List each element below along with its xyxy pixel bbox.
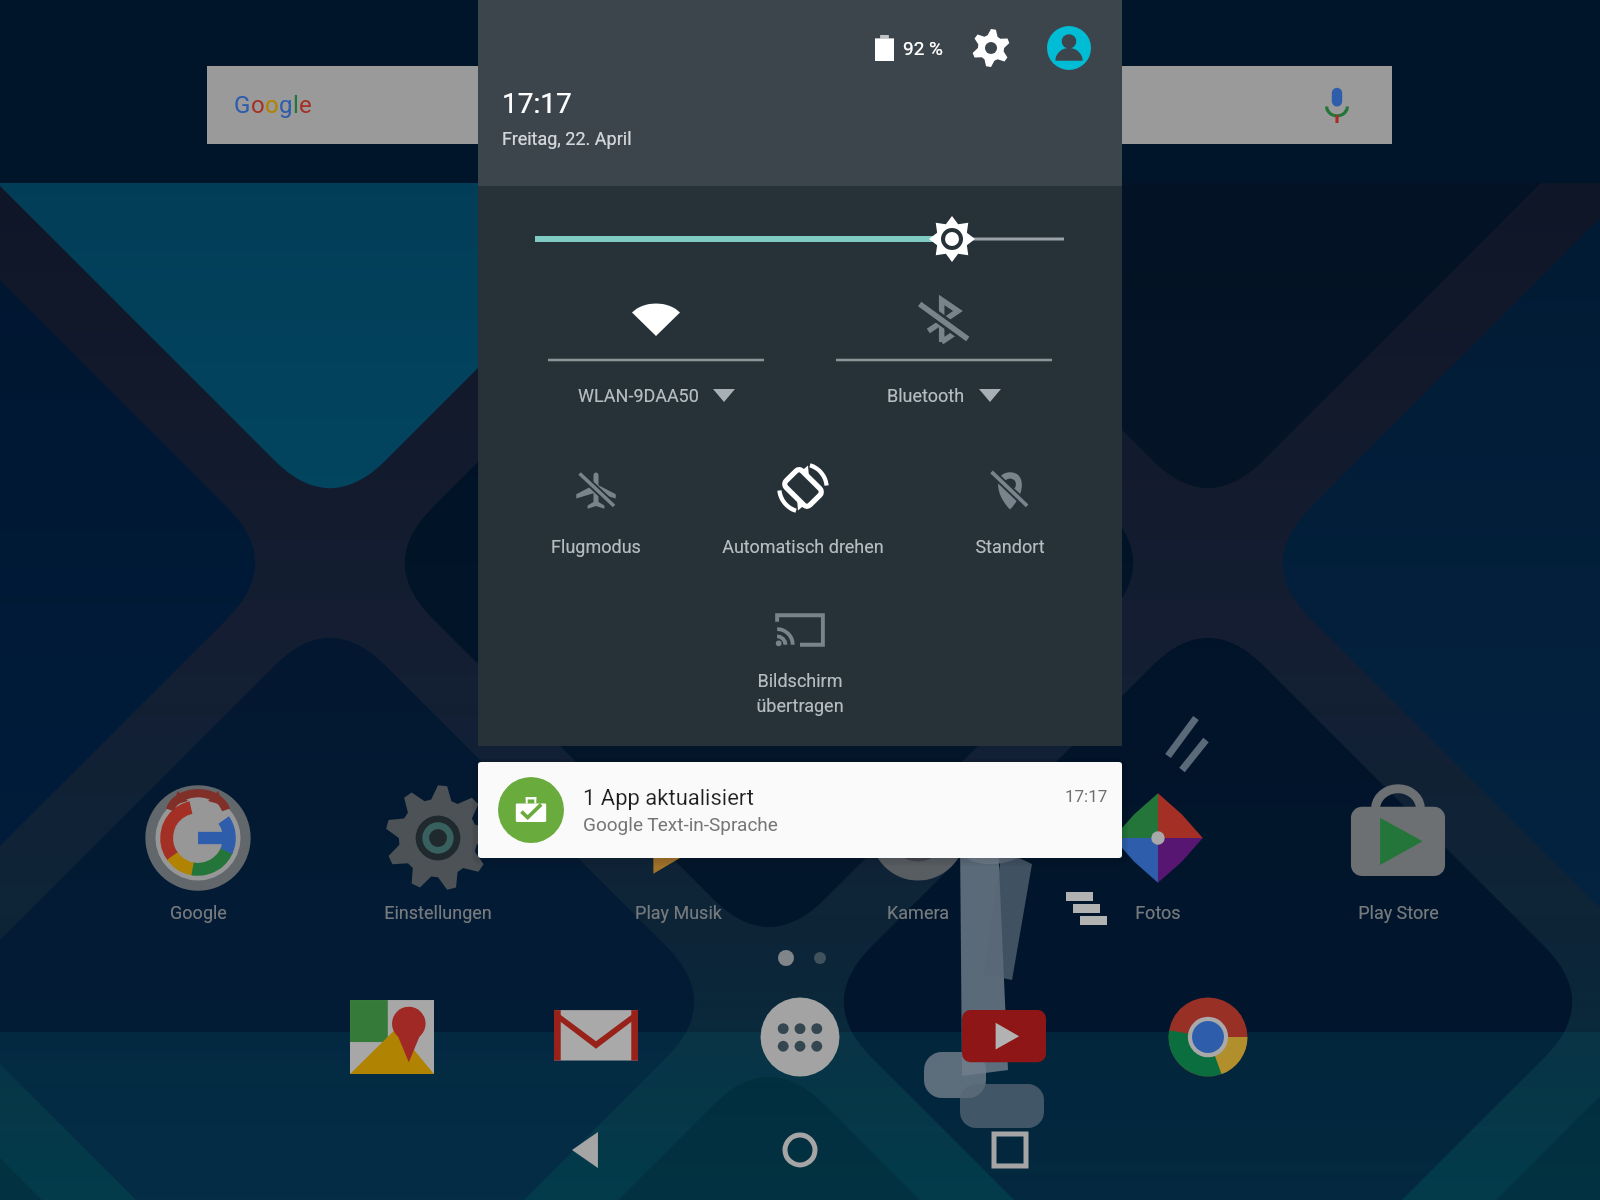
button[interactable]: App <box>1148 992 1268 1082</box>
button[interactable]: App <box>332 992 452 1082</box>
staticText: 92 % <box>903 37 943 59</box>
staticText: Kamera <box>887 902 949 923</box>
staticText: Fotos <box>1135 902 1181 923</box>
button[interactable]: Automatisch drehen <box>678 452 928 557</box>
staticText: Bildschirm übertragen <box>675 670 925 716</box>
staticText: Bluetooth <box>887 385 965 406</box>
staticText: e <box>299 91 312 119</box>
staticText: o <box>251 91 265 119</box>
button[interactable]: Play Store <box>1283 782 1513 937</box>
staticText: Standort <box>915 536 1105 557</box>
button[interactable]: Play Musik <box>563 782 793 937</box>
button[interactable]: Bluetooth <box>800 286 1088 406</box>
staticText: o <box>265 91 279 119</box>
button[interactable]: Kamera <box>803 782 1033 937</box>
staticText: Google <box>170 902 227 923</box>
staticText: Freitag, 22. April <box>502 128 632 149</box>
staticText: Automatisch drehen <box>678 536 928 557</box>
staticText: g <box>279 91 293 119</box>
button[interactable]: User profile <box>1047 26 1091 70</box>
staticText: G <box>234 91 251 119</box>
button[interactable]: WLAN-9DAA50 <box>512 286 800 406</box>
staticText: 17:17 <box>1065 786 1108 806</box>
button[interactable]: 1 App aktualisiert <box>478 762 1122 858</box>
button[interactable]: Bildschirm übertragen <box>675 594 925 716</box>
staticText: 1 App aktualisiert <box>583 785 755 811</box>
button[interactable]: Back <box>520 1100 660 1200</box>
button[interactable]: Google search <box>207 66 1392 144</box>
button[interactable]: Einstellungen <box>323 782 553 937</box>
button[interactable]: Fotos <box>1043 782 1273 937</box>
button[interactable]: Flugmodus <box>501 452 691 557</box>
staticText: l <box>293 91 299 119</box>
button[interactable]: App <box>536 992 656 1082</box>
button[interactable]: App <box>944 992 1064 1082</box>
staticText: 17:17 <box>502 87 572 120</box>
button[interactable]: App <box>740 992 860 1082</box>
staticText: Einstellungen <box>384 902 492 923</box>
button[interactable]: Home <box>730 1100 870 1200</box>
button[interactable]: Recent apps <box>940 1100 1080 1200</box>
staticText: Google Text-in-Sprache <box>583 813 778 835</box>
button[interactable]: Settings <box>968 25 1014 71</box>
button[interactable]: Google <box>83 782 313 937</box>
staticText: Flugmodus <box>501 536 691 557</box>
staticText: WLAN-9DAA50 <box>578 385 699 406</box>
staticText: Play Store <box>1358 902 1439 923</box>
button[interactable]: Standort <box>915 452 1105 557</box>
staticText: Play Musik <box>635 902 722 923</box>
